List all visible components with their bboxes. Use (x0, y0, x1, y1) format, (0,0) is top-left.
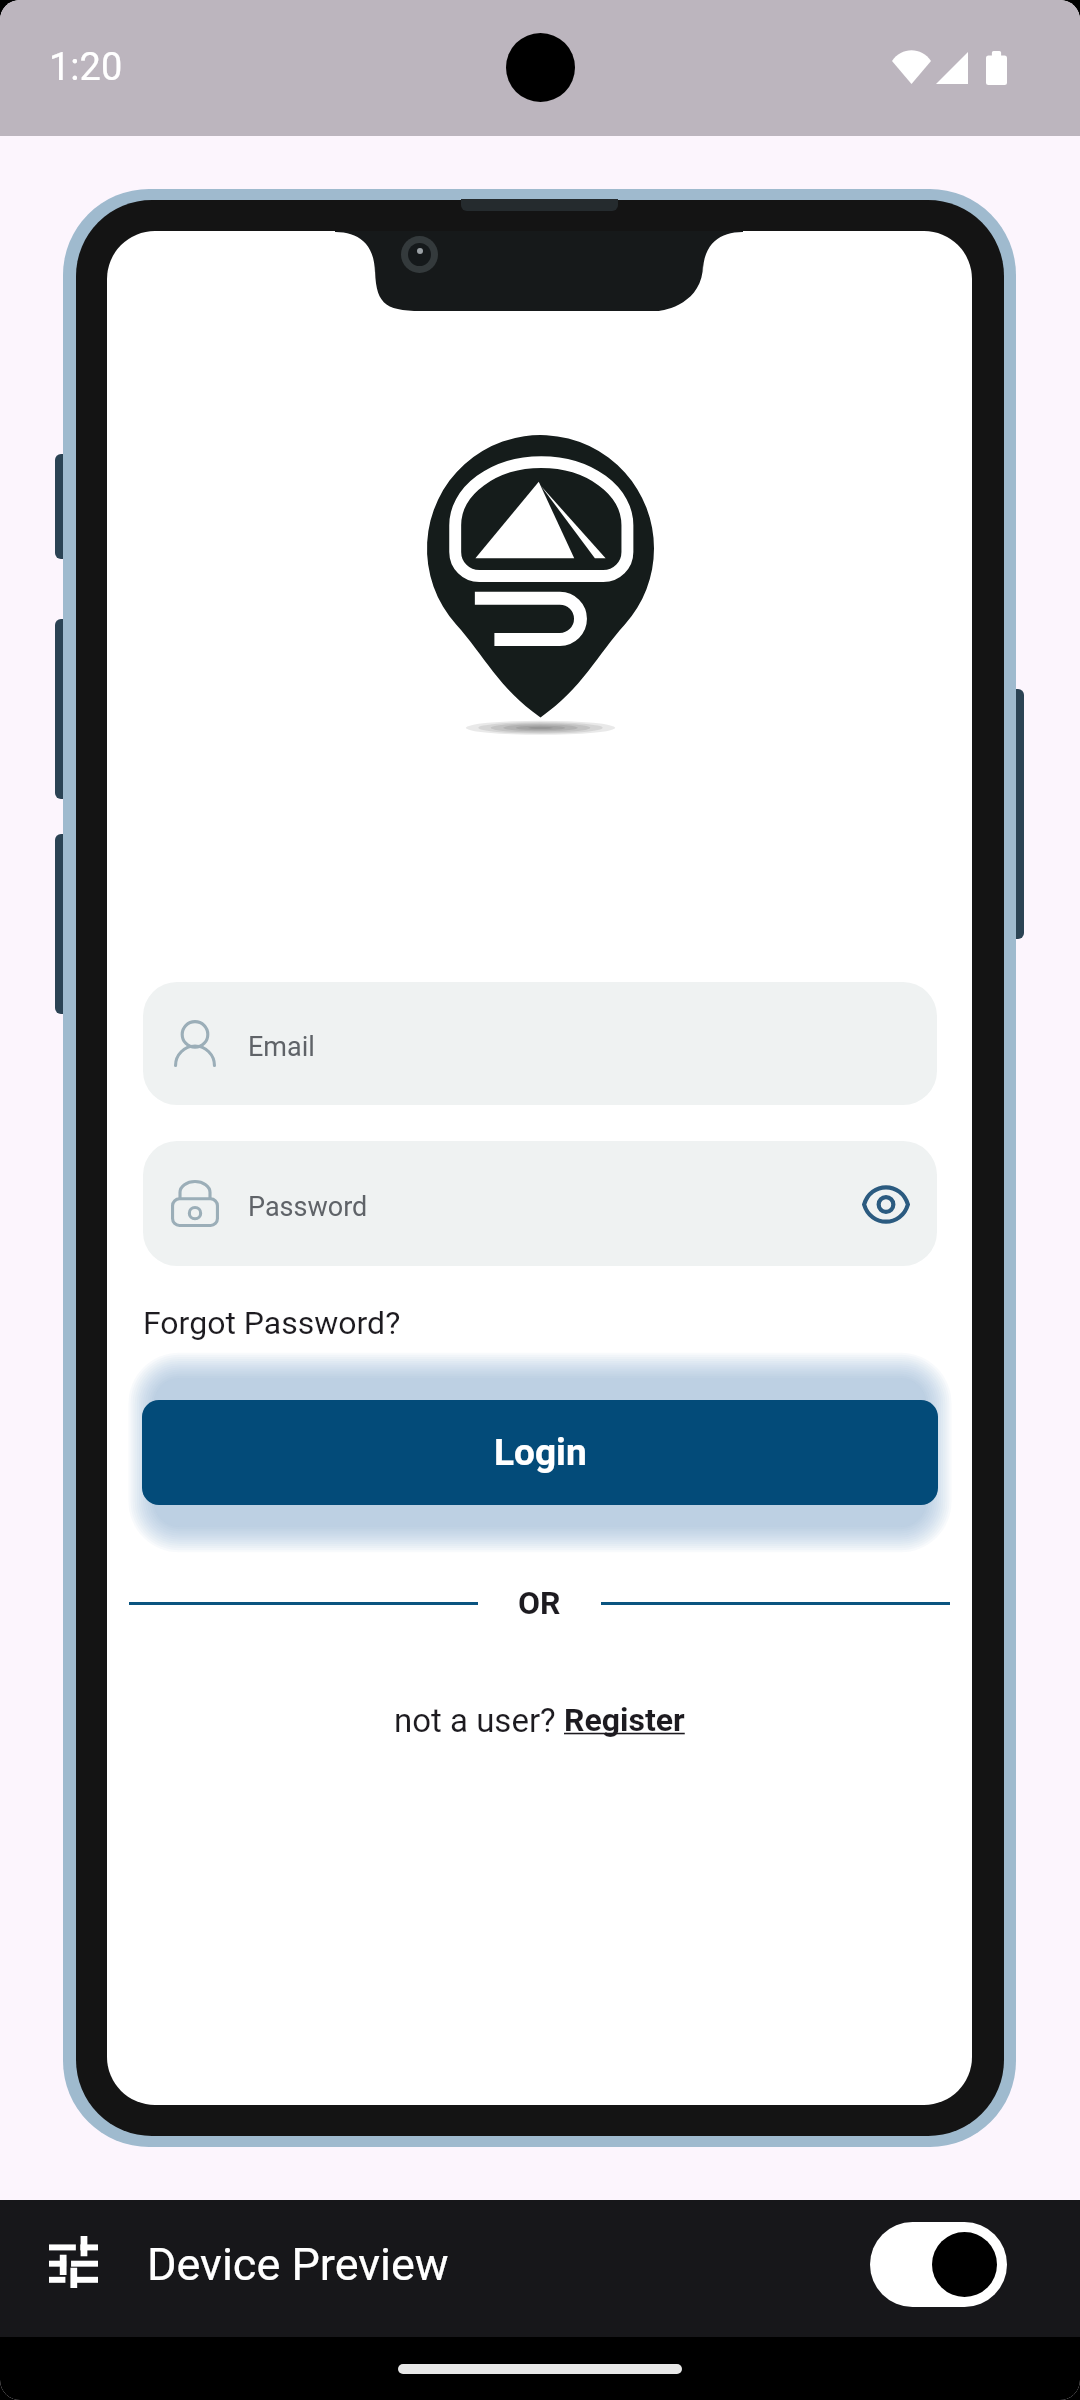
button[interactable]: Forgot Password? (143, 1299, 401, 1347)
staticText: Password (248, 1191, 368, 1223)
button[interactable]: Login (142, 1400, 938, 1505)
button[interactable]: Register (564, 1701, 685, 1739)
button[interactable]: Show password (846, 1164, 926, 1244)
staticText: Forgot Password? (143, 1304, 401, 1342)
button[interactable]: Password (143, 1141, 937, 1266)
staticText: Device Preview (147, 2238, 449, 2291)
button[interactable]: Device Preview (0, 2200, 1080, 2337)
staticText: Login (494, 1431, 587, 1474)
staticText: not a user? (394, 1701, 564, 1740)
staticText: Email (248, 1031, 315, 1063)
staticText: 1:20 (49, 45, 123, 90)
staticText: OR (518, 1584, 561, 1622)
button[interactable]: Email (143, 982, 937, 1105)
button[interactable]: Toggle device preview (870, 2222, 1007, 2307)
